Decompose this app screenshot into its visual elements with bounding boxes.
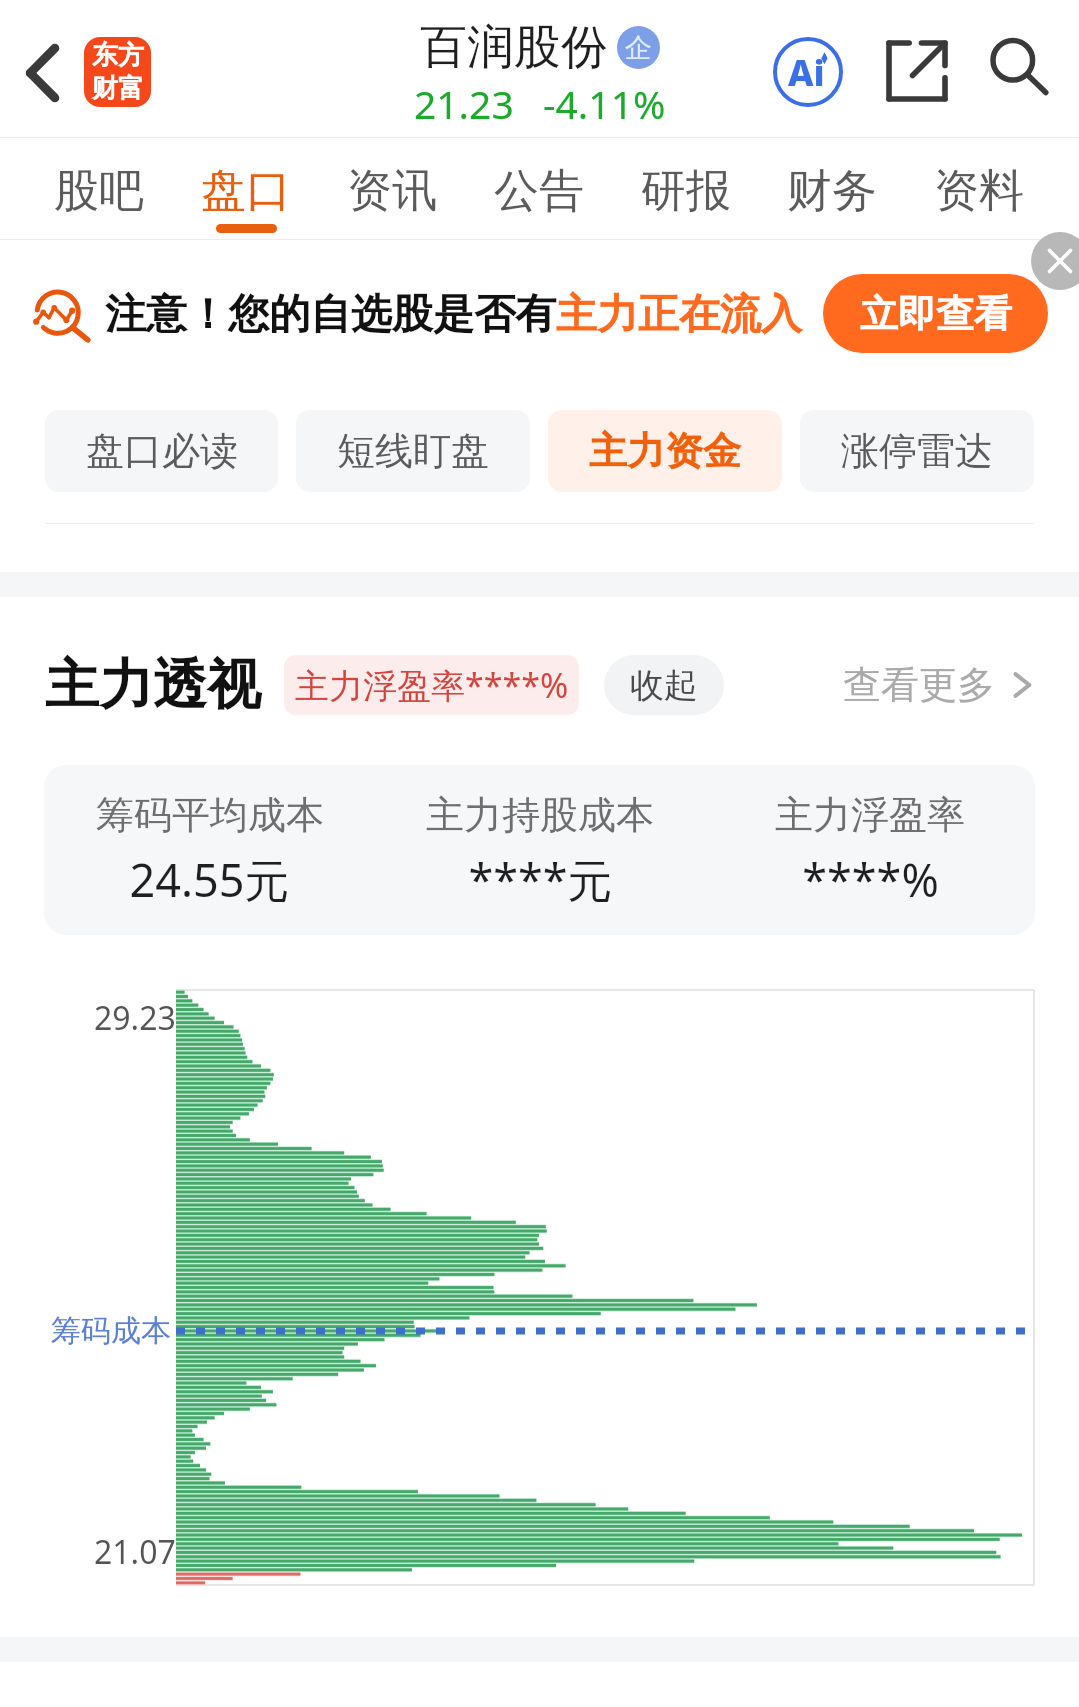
staticText: 主力正在流入 [556,289,802,341]
staticText: 筹码成本 [51,1312,171,1350]
button[interactable]: East Money home [84,37,151,107]
button[interactable]: 盘口必读 [45,410,278,492]
button[interactable]: 财务 [783,138,881,233]
staticText: 收起 [630,664,698,707]
button[interactable]: AI assistant [760,24,856,120]
staticText: 21.07 [94,1530,176,1574]
staticText: 29.23 [94,996,176,1040]
staticText: 盘口 [201,163,291,220]
staticText: 立即查看 [860,290,1012,338]
staticText: 主力透视 [45,651,261,719]
button[interactable]: Close banner [1019,240,1079,300]
button[interactable]: Share [877,31,957,111]
button[interactable]: 盘口 [197,138,295,233]
staticText: ****% [802,849,939,910]
staticText: 短线盯盘 [337,427,489,475]
button[interactable]: 股吧 [50,138,148,233]
button[interactable]: Back [3,33,83,113]
staticText: 21.23 [414,77,514,130]
staticText: ****元 [468,849,613,910]
button[interactable]: 公告 [490,138,588,233]
staticText: 企 [625,31,652,65]
staticText: 主力浮盈率 [775,791,965,839]
staticText: 财务 [787,163,877,220]
button[interactable]: Search [980,28,1060,108]
button[interactable]: 研报 [637,138,735,233]
button[interactable]: 资料 [930,138,1028,233]
button[interactable]: 主力资金 [548,410,782,492]
staticText: 主力资金 [589,427,741,475]
button[interactable]: 收起 [604,655,724,715]
staticText: 筹码平均成本 [96,791,324,839]
button[interactable]: 涨停雷达 [800,410,1034,492]
button[interactable]: 资讯 [343,138,441,233]
button[interactable]: 立即查看 [823,274,1048,353]
staticText: 百润股份 [420,18,608,77]
staticText: -4.11% [543,77,666,130]
staticText: 查看更多 [843,661,995,709]
staticText: 24.55元 [129,849,290,910]
staticText: 研报 [641,163,731,220]
staticText: 股吧 [54,163,144,220]
staticText: 财富 [92,72,144,105]
staticText: 东方 [92,39,144,72]
button[interactable]: 主力浮盈率****% [284,655,579,715]
staticText: 主力浮盈率****% [295,662,569,708]
staticText: 资讯 [347,163,437,220]
staticText: Ai [788,48,825,97]
button[interactable]: 查看更多 [843,653,1035,717]
staticText: 资料 [934,163,1024,220]
staticText: 公告 [494,163,584,220]
staticText: 主力持股成本 [426,791,654,839]
staticText: 注意！您的自选股是否有 [105,289,556,341]
staticText: 盘口必读 [86,427,238,475]
button[interactable]: 短线盯盘 [296,410,530,492]
staticText: 涨停雷达 [841,427,993,475]
